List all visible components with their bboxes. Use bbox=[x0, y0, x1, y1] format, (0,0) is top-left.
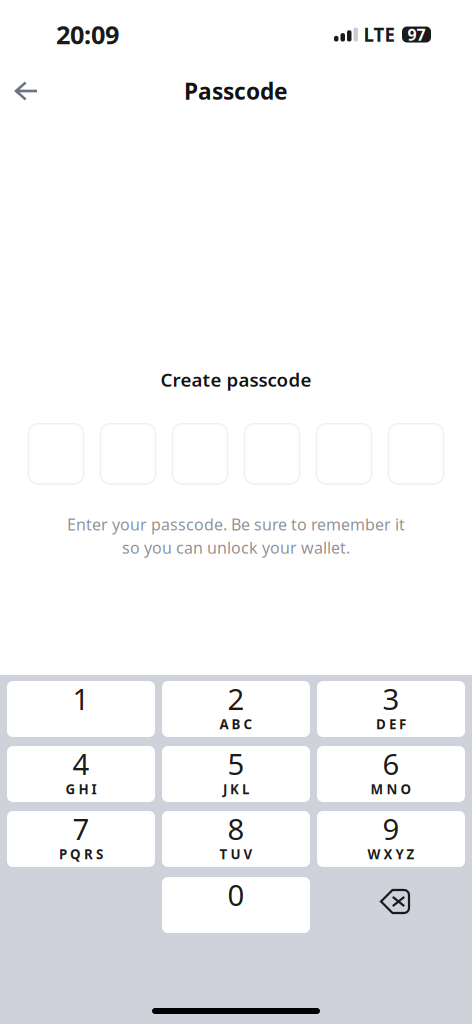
button[interactable]: 2 bbox=[162, 681, 310, 737]
staticText: M N O bbox=[370, 780, 411, 798]
button[interactable]: 6 bbox=[317, 746, 465, 802]
button[interactable]: 9 bbox=[317, 811, 465, 867]
staticText: Passcode bbox=[184, 76, 288, 106]
button[interactable]: 0 bbox=[162, 877, 310, 933]
staticText: 1 bbox=[72, 679, 89, 718]
button[interactable]: 1 bbox=[7, 681, 155, 737]
staticText: Create passcode bbox=[160, 367, 311, 392]
staticText: W X Y Z bbox=[367, 845, 414, 863]
button[interactable]: 5 bbox=[162, 746, 310, 802]
staticText: 7 bbox=[72, 809, 89, 848]
staticText: 97 bbox=[407, 24, 425, 45]
button[interactable]: 4 bbox=[7, 746, 155, 802]
button[interactable]: Delete bbox=[317, 877, 465, 933]
staticText: T U V bbox=[219, 845, 252, 863]
staticText: 8 bbox=[227, 809, 244, 848]
staticText: 20:09 bbox=[56, 18, 119, 51]
staticText: P Q R S bbox=[59, 845, 103, 863]
button[interactable]: 3 bbox=[317, 681, 465, 737]
staticText: 2 bbox=[227, 679, 244, 718]
staticText: 3 bbox=[382, 679, 399, 718]
staticText: 9 bbox=[382, 809, 399, 848]
button[interactable]: 7 bbox=[7, 811, 155, 867]
staticText: 5 bbox=[227, 744, 244, 783]
button[interactable]: Back bbox=[0, 70, 49, 111]
staticText: G H I bbox=[65, 780, 96, 798]
staticText: J K L bbox=[223, 780, 249, 798]
staticText: A B C bbox=[219, 715, 252, 733]
staticText: 6 bbox=[382, 744, 399, 783]
staticText: D E F bbox=[376, 715, 406, 733]
button[interactable]: 8 bbox=[162, 811, 310, 867]
staticText: so you can unlock your wallet. bbox=[122, 537, 350, 558]
staticText: 0 bbox=[227, 875, 244, 914]
staticText: Enter your passcode. Be sure to remember… bbox=[67, 514, 405, 535]
staticText: 4 bbox=[72, 744, 89, 783]
staticText: LTE bbox=[363, 22, 394, 47]
